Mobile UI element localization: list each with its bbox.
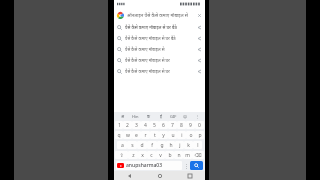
button[interactable]: f xyxy=(147,141,157,149)
staticText: s xyxy=(131,142,134,149)
staticText: 3 xyxy=(135,122,138,129)
button[interactable]: q xyxy=(115,131,123,139)
staticText: f xyxy=(151,142,153,149)
staticText: y xyxy=(162,132,165,139)
button[interactable]: Hin xyxy=(129,112,142,120)
button[interactable]: Home xyxy=(145,171,175,180)
staticText: 2 xyxy=(126,122,129,129)
other: Search xyxy=(117,47,122,52)
button[interactable]: Search xyxy=(190,161,203,170)
button[interactable]: Back xyxy=(114,171,145,180)
button[interactable]: ☺ xyxy=(179,112,191,120)
button[interactable]: Search xyxy=(114,55,205,66)
staticText: पैसे कैसे कमाए मोबाइल से घर बैठे xyxy=(125,58,174,64)
button[interactable]: k xyxy=(184,141,193,149)
button[interactable]: a xyxy=(117,141,127,149)
button[interactable]: Insert query xyxy=(197,36,202,41)
staticText: n xyxy=(177,152,181,159)
button[interactable]: r xyxy=(141,131,150,139)
staticText: l xyxy=(197,142,199,149)
button[interactable]: o xyxy=(186,131,195,139)
staticText: 9 xyxy=(189,122,192,129)
staticText: 8 xyxy=(180,122,183,129)
staticText: q xyxy=(117,132,121,139)
button[interactable]: w xyxy=(123,131,132,139)
staticText: ⋮ xyxy=(184,163,189,169)
button[interactable]: u xyxy=(168,131,177,139)
button[interactable]: n xyxy=(174,151,183,159)
button[interactable]: Insert query xyxy=(197,58,202,63)
button[interactable]: Clear xyxy=(197,13,202,18)
button[interactable]: ⋮ xyxy=(183,161,189,170)
button[interactable]: c xyxy=(147,151,156,159)
staticText: z xyxy=(132,152,135,159)
staticText: 7 xyxy=(171,122,174,129)
staticText: ऑनलाइन पैसे कैसे कमाए मोबाइल से xyxy=(127,12,195,18)
staticText: ⇧ xyxy=(119,152,124,158)
button[interactable]: Search xyxy=(114,44,205,55)
button[interactable]: 8 xyxy=(177,121,186,129)
button[interactable]: v xyxy=(156,151,165,159)
button[interactable]: 3 xyxy=(132,121,141,129)
button[interactable]: 0 xyxy=(195,121,204,129)
staticText: Hin xyxy=(132,114,139,119)
button[interactable]: m xyxy=(183,151,192,159)
button[interactable]: 2 xyxy=(123,121,132,129)
button[interactable]: 4 xyxy=(141,121,150,129)
staticText: e xyxy=(135,132,138,139)
staticText: ई xyxy=(160,114,162,119)
button[interactable]: अ xyxy=(116,112,129,120)
button[interactable]: l xyxy=(193,141,202,149)
staticText: o xyxy=(189,132,193,139)
button[interactable]: j xyxy=(175,141,184,149)
button[interactable]: d xyxy=(137,141,147,149)
button[interactable]: 5 xyxy=(150,121,159,129)
staticText: 6 xyxy=(162,122,165,129)
button[interactable]: YouTube xyxy=(116,161,182,170)
button[interactable]: z xyxy=(128,151,138,159)
other: YouTube xyxy=(117,163,124,168)
staticText: अ xyxy=(121,114,125,119)
button[interactable]: 7 xyxy=(168,121,177,129)
staticText: k xyxy=(187,142,190,149)
button[interactable]: h xyxy=(166,141,175,149)
button[interactable]: Insert query xyxy=(197,69,202,74)
button[interactable]: Search xyxy=(114,22,205,33)
button[interactable]: 1 xyxy=(115,121,123,129)
staticText: पैसे कैसे कमाए मोबाइल से घर बैठे xyxy=(125,36,177,42)
button[interactable]: 6 xyxy=(159,121,168,129)
button[interactable]: Recents xyxy=(175,171,205,180)
button[interactable]: p xyxy=(195,131,204,139)
button[interactable]: Search xyxy=(114,66,205,77)
button[interactable]: t xyxy=(150,131,159,139)
button[interactable]: e xyxy=(132,131,141,139)
button[interactable]: ⌫ xyxy=(192,151,204,159)
other: Google xyxy=(117,12,124,19)
button[interactable]: क xyxy=(142,112,155,120)
button[interactable]: x xyxy=(138,151,147,159)
staticText: anupsharma03 xyxy=(126,162,163,169)
staticText: c xyxy=(150,152,153,159)
button[interactable]: b xyxy=(165,151,174,159)
other: Search xyxy=(117,58,122,63)
button[interactable]: Insert query xyxy=(197,47,202,52)
button[interactable]: g xyxy=(157,141,166,149)
button[interactable]: ⇧ xyxy=(115,151,128,159)
button[interactable]: ⋮ xyxy=(191,112,203,120)
staticText: i xyxy=(181,132,183,139)
button[interactable]: Google xyxy=(114,8,205,22)
button[interactable]: y xyxy=(159,131,168,139)
button[interactable]: Insert query xyxy=(197,25,202,30)
button[interactable]: GIF xyxy=(167,112,179,120)
button[interactable]: 9 xyxy=(186,121,195,129)
staticText: t xyxy=(154,132,156,139)
staticText: w xyxy=(126,132,130,139)
staticText: p xyxy=(198,132,202,139)
button[interactable]: s xyxy=(127,141,137,149)
button[interactable]: ई xyxy=(155,112,167,120)
staticText: d xyxy=(140,142,144,149)
button[interactable]: i xyxy=(177,131,186,139)
staticText: m xyxy=(185,152,190,159)
staticText: पैसे कैसे कमाए मोबाइल से घर बैठे xyxy=(125,47,167,53)
button[interactable]: Search xyxy=(114,33,205,44)
